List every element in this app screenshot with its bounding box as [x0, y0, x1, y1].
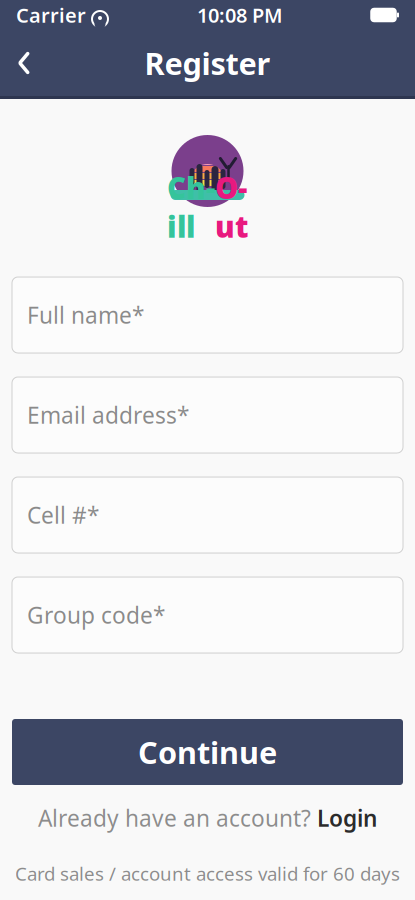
staticText: Out: [215, 168, 248, 246]
button[interactable]: Back: [0, 39, 48, 87]
button[interactable]: Continue: [12, 719, 403, 785]
staticText: Chill: [167, 168, 215, 246]
staticText: Already have an account?: [38, 803, 311, 833]
staticText: Carrier: [16, 2, 86, 28]
staticText: Group code*: [27, 600, 165, 630]
staticText: Full name*: [27, 300, 144, 330]
button[interactable]: Already have an account?: [0, 797, 415, 839]
staticText: Continue: [138, 732, 277, 772]
staticText: Login: [317, 803, 377, 833]
staticText: Card sales / account access valid for 60…: [15, 861, 400, 886]
staticText: Cell #*: [27, 500, 99, 530]
staticText: Register: [144, 43, 270, 83]
staticText: 10:08 PM: [197, 2, 283, 28]
staticText: Email address*: [27, 400, 189, 430]
